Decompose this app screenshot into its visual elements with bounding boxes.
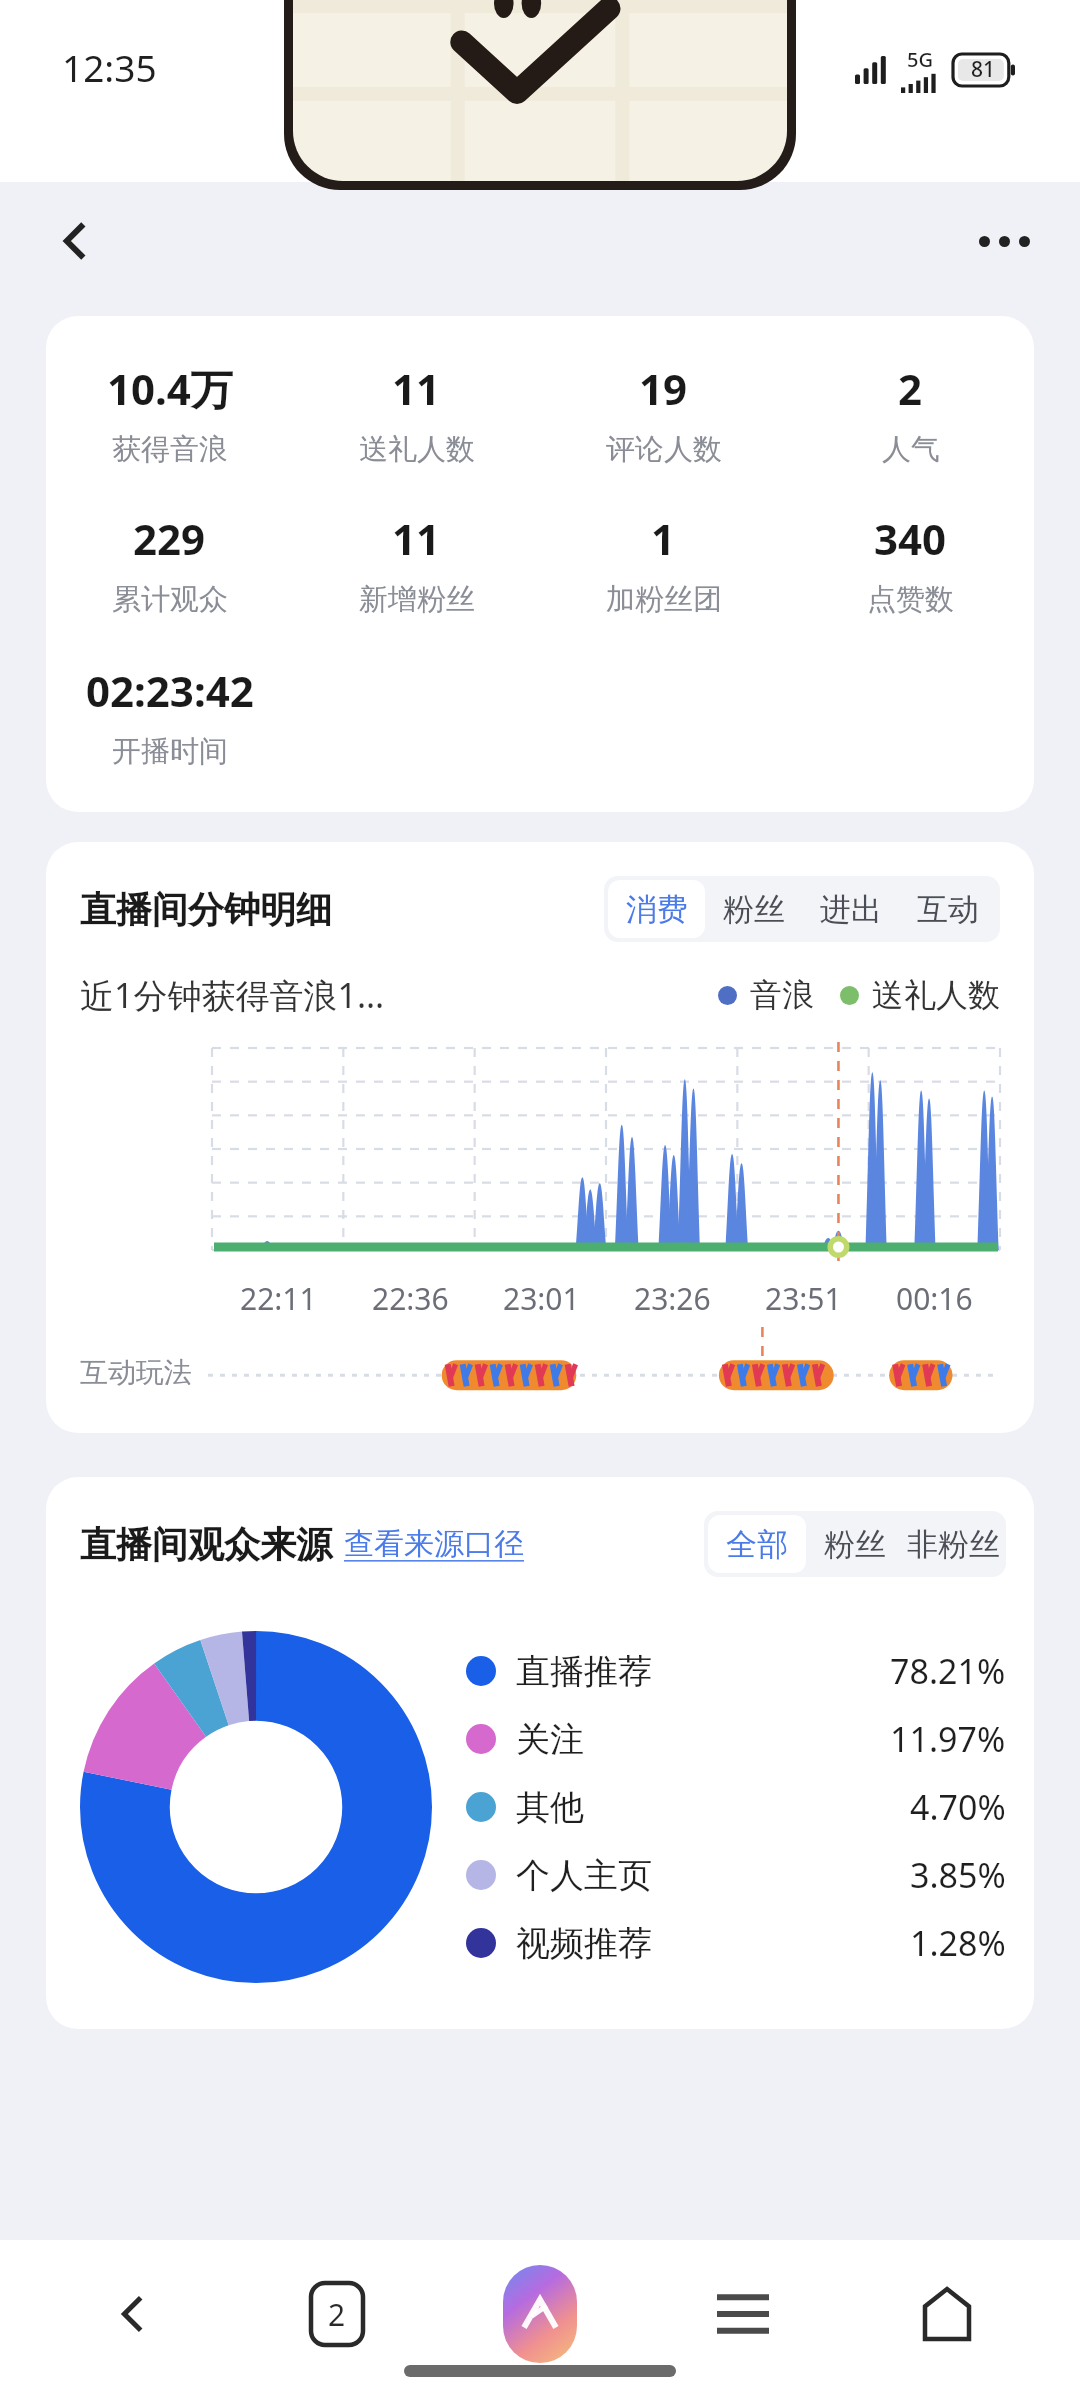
staticText: 78.21% — [890, 1648, 1006, 1694]
staticText: 12:35 — [62, 42, 157, 92]
button[interactable]: Assistant — [470, 2262, 610, 2366]
staticText: 2 — [328, 2294, 346, 2335]
staticText: 23:01 — [503, 1278, 580, 1319]
button[interactable]: 02:23:42 — [46, 662, 293, 770]
staticText: 加粉丝团 — [606, 581, 722, 618]
staticText: 81 — [971, 55, 996, 84]
button[interactable]: 1 — [540, 510, 787, 618]
staticText: 00:16 — [896, 1278, 973, 1319]
staticText: 11 — [392, 360, 441, 417]
staticText: 累计观众 — [112, 581, 228, 618]
staticText: 23:26 — [634, 1278, 711, 1319]
button[interactable]: 10.4万 — [46, 360, 293, 468]
staticText: 直播推荐 — [516, 1650, 652, 1693]
button[interactable]: 粉丝 — [806, 1515, 904, 1573]
staticText: 直播间分钟明细 — [80, 887, 332, 932]
button[interactable]: 关注 — [466, 1716, 1006, 1762]
staticText: 19 — [639, 360, 688, 417]
staticText: 2 — [898, 360, 923, 417]
staticText: 02:23:42 — [86, 662, 254, 719]
staticText: 3.85% — [910, 1852, 1006, 1898]
button[interactable]: 粉丝 — [705, 880, 802, 938]
button[interactable]: 进出 — [802, 880, 899, 938]
staticText: 23:51 — [765, 1278, 842, 1319]
staticText: 视频推荐 — [516, 1922, 652, 1965]
button[interactable]: 消费 — [608, 880, 705, 938]
staticText: 评论人数 — [606, 431, 722, 468]
staticText: 5G — [907, 46, 933, 73]
button[interactable]: 直播推荐 — [466, 1648, 1006, 1694]
button[interactable]: 全部 — [708, 1515, 806, 1573]
staticText: 22:11 — [240, 1278, 317, 1319]
staticText: 11 — [392, 510, 441, 567]
staticText: 个人主页 — [516, 1854, 652, 1897]
staticText: 10.4万 — [107, 360, 233, 417]
staticText: 新增粉丝 — [359, 581, 475, 618]
button[interactable]: Home — [877, 2262, 1017, 2366]
button[interactable]: 互动 — [899, 880, 996, 938]
button[interactable]: 11 — [293, 360, 540, 468]
staticText: 进出 — [820, 890, 882, 929]
staticText: 人气 — [882, 431, 940, 468]
staticText: 229 — [133, 510, 206, 567]
staticText: 其他 — [516, 1786, 584, 1829]
button[interactable]: 19 — [540, 360, 787, 468]
staticText: 4.70% — [910, 1784, 1006, 1830]
button[interactable]: Menu — [673, 2262, 813, 2366]
staticText: 查看来源口径 — [344, 1525, 524, 1563]
staticText: 关注 — [516, 1718, 584, 1761]
staticText: 全部 — [726, 1525, 788, 1564]
button[interactable]: 2 — [787, 360, 1034, 468]
button[interactable]: 其他 — [466, 1784, 1006, 1830]
staticText: 1.28% — [910, 1920, 1006, 1966]
staticText: 340 — [874, 510, 947, 567]
button[interactable] — [293, 0, 787, 181]
staticText: 非粉丝 — [907, 1525, 1000, 1564]
staticText: 获得音浪 — [112, 431, 228, 468]
button[interactable]: 个人主页 — [466, 1852, 1006, 1898]
staticText: 互动 — [917, 890, 979, 929]
staticText: 消费 — [626, 890, 688, 929]
button[interactable]: 11 — [293, 510, 540, 618]
staticText: 直播间观众来源 — [80, 1522, 332, 1567]
button[interactable]: 非粉丝 — [904, 1515, 1002, 1573]
button[interactable]: Back — [63, 2262, 203, 2366]
staticText: 送礼人数 — [359, 431, 475, 468]
button[interactable]: Tabs — [267, 2262, 407, 2366]
staticText: 送礼人数 — [872, 975, 1000, 1015]
staticText: 开播时间 — [112, 733, 228, 770]
staticText: 22:36 — [372, 1278, 449, 1319]
staticText: 粉丝 — [824, 1525, 886, 1564]
button[interactable]: 视频推荐 — [466, 1920, 1006, 1966]
staticText: 点赞数 — [867, 581, 954, 618]
button[interactable]: Back — [38, 203, 114, 279]
button[interactable]: 查看来源口径 — [344, 1525, 524, 1563]
staticText: 互动玩法 — [80, 1355, 192, 1390]
staticText: 近1分钟获得音浪1... — [80, 972, 385, 1018]
staticText: 粉丝 — [723, 890, 785, 929]
button[interactable]: 340 — [787, 510, 1034, 618]
button[interactable]: 229 — [46, 510, 293, 618]
staticText: 1 — [651, 510, 676, 567]
button[interactable]: More options — [966, 203, 1042, 279]
staticText: 11.97% — [890, 1716, 1006, 1762]
staticText: 音浪 — [750, 975, 814, 1015]
